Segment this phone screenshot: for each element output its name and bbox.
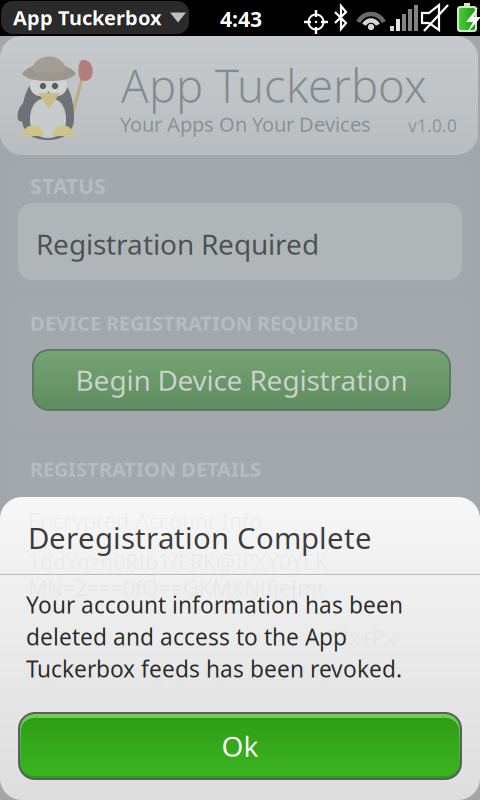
staticText: Begin Device Registration	[75, 361, 407, 399]
staticText: MN=2===0fQ==GKMXNlfiejmt	[28, 574, 325, 602]
staticText: 1ddYqzn0RIb1/ERK@IPXY0YEK	[28, 548, 328, 576]
staticText: Ok	[221, 727, 258, 765]
staticText: App Tuckerbox	[13, 4, 162, 31]
staticText: v1.0.0	[408, 114, 457, 137]
staticText: Deregistration Complete	[28, 518, 372, 557]
button[interactable]: App Tuckerbox	[0, 0, 480, 800]
button[interactable]: Begin Device Registration	[0, 0, 480, 800]
staticText: DEVICE REGISTRATION REQUIRED	[30, 310, 359, 336]
staticText: Registration Required	[36, 225, 319, 262]
staticText: App Tuckerbox	[121, 55, 427, 115]
staticText: 4:43	[220, 5, 262, 33]
staticText: deleted and access to the App	[26, 621, 347, 652]
staticText: STATUS	[30, 172, 106, 200]
staticText: TqjIfqSc1RoiqkSOK@CsEEMMjgJ	[28, 659, 345, 687]
staticText: Your Apps On Your Devices	[120, 111, 371, 137]
staticText: Encrypted Account Info	[28, 507, 262, 535]
staticText: Tuckerbox feeds has been revoked.	[26, 653, 402, 684]
button[interactable]: Ok	[0, 0, 480, 800]
staticText: Your account information has been	[26, 589, 403, 620]
staticText: REGISTRATION DETAILS	[30, 456, 261, 482]
staticText: XJx+Px	[330, 624, 396, 652]
